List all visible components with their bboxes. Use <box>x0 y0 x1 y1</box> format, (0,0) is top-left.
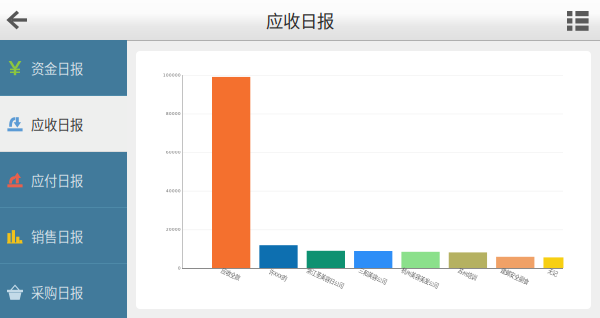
staticText: 80000 <box>166 111 181 116</box>
staticText: 0 <box>178 266 181 270</box>
staticText: 20000 <box>166 227 181 232</box>
button[interactable]: 资金日报 <box>0 40 127 96</box>
button[interactable]: 应收日报 <box>0 96 127 152</box>
staticText: 资金日报 <box>31 58 83 78</box>
button[interactable]: Back <box>0 0 50 39</box>
staticText: 采购日报 <box>31 282 83 302</box>
staticText: 40000 <box>166 188 181 193</box>
button[interactable]: Switch list layout <box>545 0 600 39</box>
staticText: 浙江圣美容日公司 <box>305 274 345 282</box>
staticText: 应收日报 <box>31 114 83 134</box>
staticText: 60000 <box>166 150 181 155</box>
staticText: 无记 <box>548 268 558 276</box>
button[interactable]: 采购日报 <box>0 264 127 318</box>
button[interactable]: 应付日报 <box>0 152 127 208</box>
staticText: 苏州培训 <box>457 270 477 278</box>
button[interactable]: 销售日报 <box>0 208 127 264</box>
staticText: 许XXX的 <box>269 271 288 279</box>
staticText: 三和美容公司 <box>358 272 388 280</box>
staticText: 应收日报 <box>266 7 334 33</box>
staticText: 建邺安全副食 <box>500 272 530 280</box>
staticText: 应付日报 <box>31 170 83 190</box>
staticText: 100000 <box>163 73 181 77</box>
staticText: 销售日报 <box>31 226 83 246</box>
staticText: 杭州美容美发公司 <box>400 274 440 282</box>
staticText: 应收全款 <box>221 270 241 278</box>
